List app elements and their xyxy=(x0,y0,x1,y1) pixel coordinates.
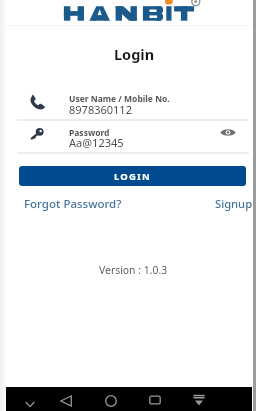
button[interactable]: Signup xyxy=(215,196,253,211)
staticText: Password xyxy=(69,127,110,139)
staticText: Login xyxy=(114,44,155,64)
button[interactable]: LOGIN xyxy=(19,166,246,186)
staticText: LOGIN xyxy=(114,170,151,183)
button[interactable]: Switch keyboard xyxy=(189,391,209,411)
button[interactable]: Password xyxy=(17,122,249,152)
button[interactable]: Show password xyxy=(219,123,237,141)
button[interactable]: Forgot Password? xyxy=(24,196,122,212)
staticText: Aa@12345 xyxy=(69,135,124,150)
button[interactable]: Home xyxy=(101,391,121,411)
staticText: Version : 1.0.3 xyxy=(99,263,168,277)
button[interactable]: Back xyxy=(56,391,76,411)
staticText: User Name / Mobile No. xyxy=(69,93,170,105)
button[interactable]: Hide keyboard xyxy=(20,392,40,411)
staticText: 8978360112 xyxy=(69,102,132,117)
button[interactable]: Recent apps xyxy=(145,391,165,411)
button[interactable]: User Name / Mobile No. xyxy=(17,88,249,119)
